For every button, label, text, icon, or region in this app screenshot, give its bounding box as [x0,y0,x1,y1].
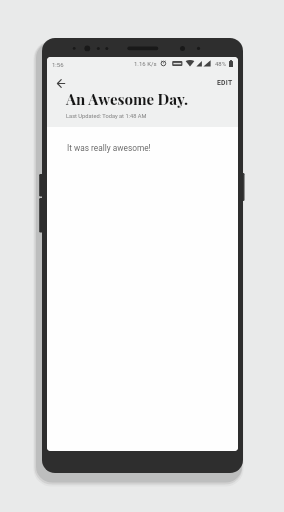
staticText: EDIT [217,79,233,87]
button[interactable] [55,77,67,89]
staticText: An Awesome Day. [66,89,189,109]
staticText: Last Updated: Today at 1:48 AM [66,113,147,120]
staticText: It was really awesome! [67,143,151,153]
staticText: 1:56 [52,61,64,68]
button[interactable]: It was really awesome! [47,127,238,451]
button[interactable]: EDIT [217,79,233,87]
staticText: 1.16 K/s [134,60,157,67]
staticText: 48% [215,60,227,67]
